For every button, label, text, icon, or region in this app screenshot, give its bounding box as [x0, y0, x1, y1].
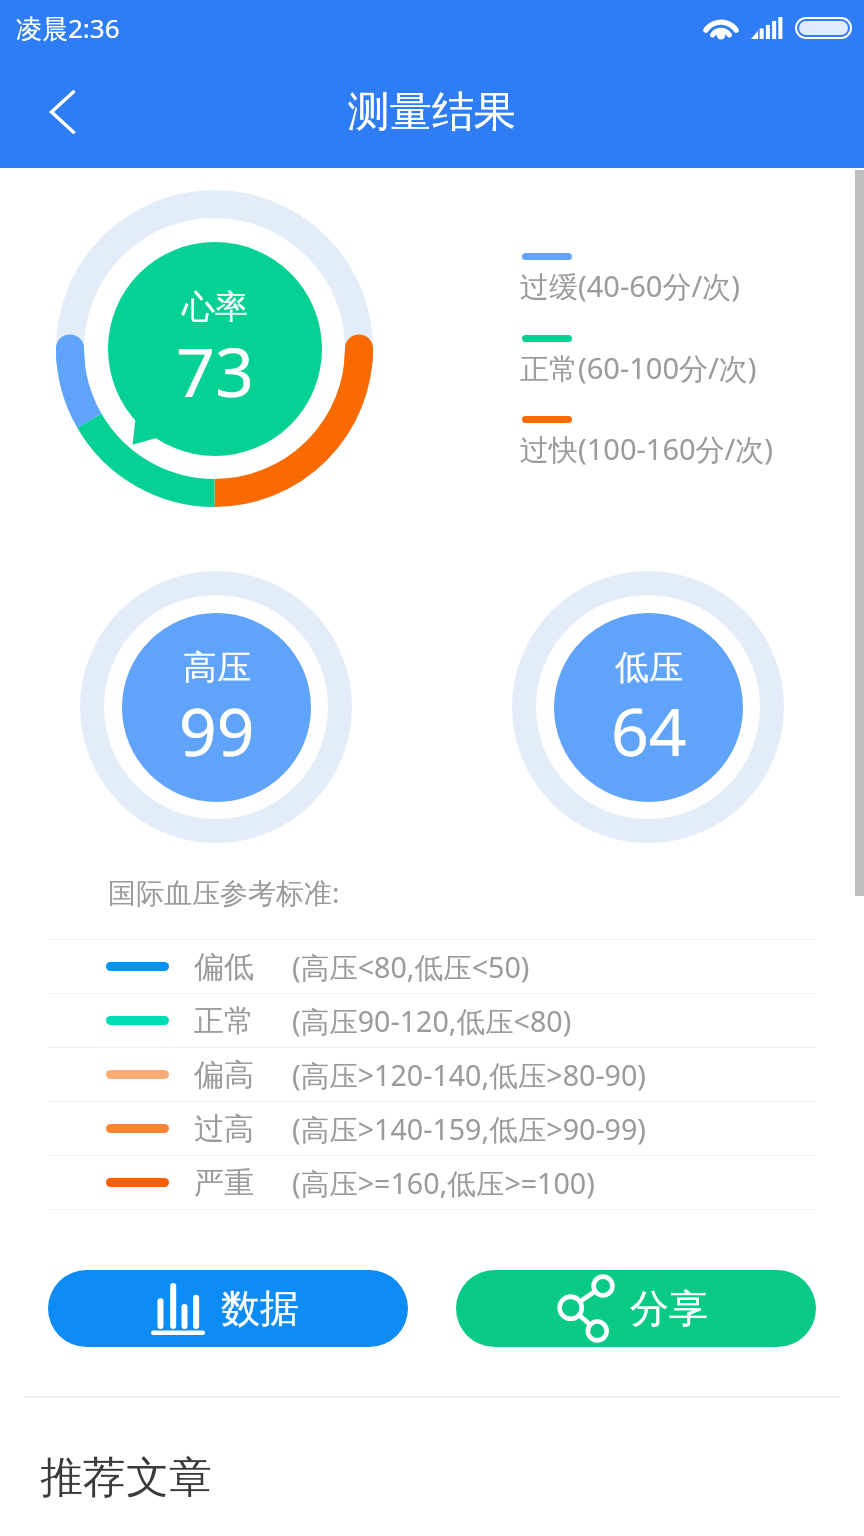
button[interactable]: 数据 [48, 1270, 408, 1347]
staticText: 过快(100-160分/次) [520, 429, 774, 469]
staticText: 73 [176, 324, 254, 417]
staticText: (高压>=160,低压>=100) [292, 1163, 595, 1202]
staticText: 偏低 [194, 948, 254, 986]
staticText: 高压 [183, 646, 251, 689]
staticText: (高压>140-159,低压>90-99) [292, 1109, 646, 1148]
staticText: (高压<80,低压<50) [292, 947, 530, 986]
staticText: 正常(60-100分/次) [520, 348, 757, 388]
staticText: 过高 [194, 1110, 254, 1148]
staticText: 分享 [630, 1284, 708, 1333]
staticText: 凌晨2:36 [16, 10, 120, 46]
staticText: 过缓(40-60分/次) [520, 266, 740, 306]
staticText: (高压>120-140,低压>80-90) [292, 1055, 646, 1094]
staticText: 国际血压参考标准: [108, 873, 340, 911]
staticText: 严重 [194, 1164, 254, 1202]
staticText: 推荐文章 [40, 1451, 212, 1505]
button[interactable]: 分享 [456, 1270, 816, 1347]
staticText: 正常 [194, 1002, 254, 1040]
staticText: (高压90-120,低压<80) [292, 1001, 572, 1040]
staticText: 低压 [615, 646, 683, 689]
staticText: 心率 [182, 286, 248, 328]
staticText: 偏高 [194, 1056, 254, 1094]
staticText: 99 [179, 685, 255, 775]
staticText: 测量结果 [348, 86, 516, 139]
staticText: 数据 [221, 1284, 299, 1333]
button[interactable]: Back [16, 64, 112, 160]
staticText: 64 [611, 685, 687, 775]
